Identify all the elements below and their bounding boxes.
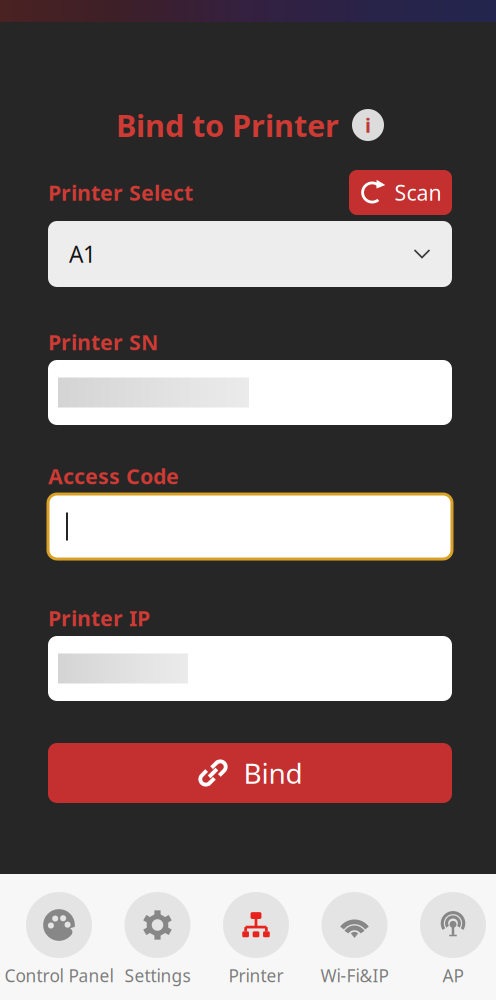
- button[interactable]: AP: [404, 892, 496, 1000]
- staticText: Settings: [124, 964, 190, 987]
- staticText: Printer: [228, 964, 283, 987]
- staticText: Access Code: [48, 462, 179, 490]
- button[interactable]: Wi-Fi&IP: [305, 892, 404, 1000]
- staticText: Bind: [243, 754, 302, 792]
- button[interactable]: A1: [48, 221, 452, 287]
- staticText: Control Panel: [4, 964, 113, 987]
- staticText: Printer SN: [48, 328, 158, 356]
- staticText: AP: [442, 964, 463, 987]
- button[interactable]: Information: [352, 109, 384, 141]
- staticText: A1: [69, 239, 96, 269]
- staticText: Printer Select: [48, 178, 193, 207]
- staticText: Printer IP: [48, 604, 150, 632]
- button[interactable]: Settings: [108, 892, 207, 1000]
- button[interactable]: Bind: [48, 743, 452, 803]
- staticText: Bind to Printer: [116, 105, 339, 145]
- staticText: i: [365, 112, 371, 138]
- button[interactable]: Printer: [207, 892, 305, 1000]
- button[interactable]: Scan: [349, 170, 452, 215]
- staticText: Wi-Fi&IP: [320, 964, 388, 987]
- button[interactable]: Control Panel: [10, 892, 108, 1000]
- staticText: Scan: [394, 178, 441, 207]
